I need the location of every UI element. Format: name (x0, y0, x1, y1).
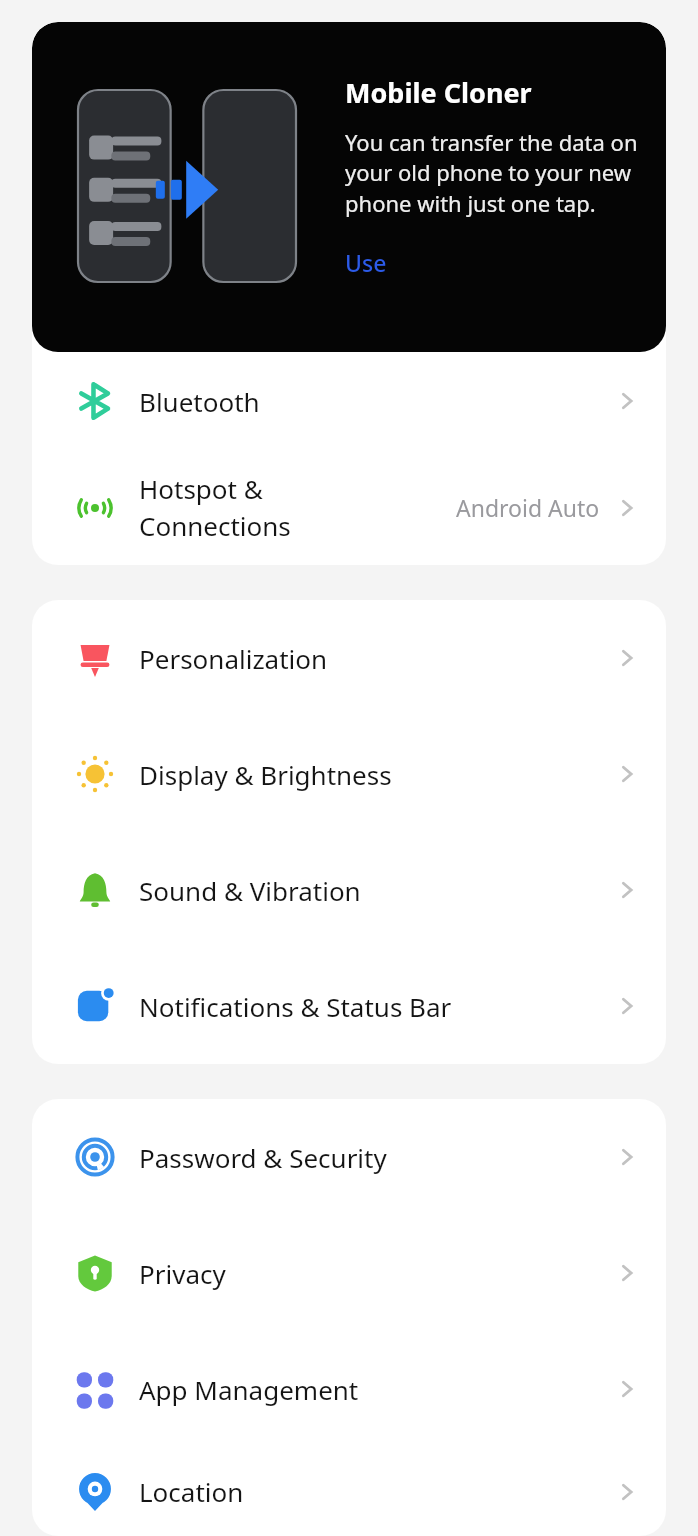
button[interactable]: App Management (32, 1331, 666, 1447)
staticText: Android Auto (456, 492, 600, 523)
staticText: App Management (139, 1372, 614, 1407)
staticText: Display & Brightness (139, 757, 614, 792)
button[interactable]: Personalization (32, 600, 666, 716)
button[interactable]: Use (345, 247, 387, 278)
button[interactable]: Notifications & Status Bar (32, 948, 666, 1064)
button[interactable]: Display & Brightness (32, 716, 666, 832)
button[interactable]: Privacy (32, 1215, 666, 1331)
staticText: Notifications & Status Bar (139, 989, 614, 1024)
staticText: Password & Security (139, 1140, 614, 1175)
staticText: Location (139, 1474, 614, 1509)
button[interactable]: Bluetooth (32, 352, 666, 450)
button[interactable]: Hotspot & Connections (32, 450, 666, 565)
staticText: Personalization (139, 641, 614, 676)
staticText: Bluetooth (139, 384, 614, 419)
staticText: Sound & Vibration (139, 873, 614, 908)
staticText: Hotspot & Connections (139, 471, 456, 544)
button[interactable]: Mobile Cloner (32, 22, 666, 352)
button[interactable]: Password & Security (32, 1099, 666, 1215)
button[interactable]: Location (32, 1447, 666, 1536)
staticText: You can transfer the data on your old ph… (345, 127, 650, 219)
staticText: Mobile Cloner (345, 74, 532, 111)
button[interactable]: Sound & Vibration (32, 832, 666, 948)
staticText: Privacy (139, 1256, 614, 1291)
staticText: Use (345, 247, 387, 278)
